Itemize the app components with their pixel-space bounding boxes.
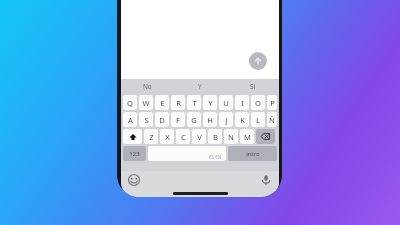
staticText: A	[128, 115, 133, 125]
staticText: U	[223, 98, 229, 108]
staticText: No	[143, 82, 152, 91]
staticText: N	[228, 132, 234, 142]
staticText: Y	[198, 82, 202, 91]
staticText: 123	[129, 150, 140, 158]
button[interactable]: J	[219, 112, 233, 127]
button[interactable]: Dictation	[260, 174, 272, 186]
button[interactable]: Ñ	[267, 112, 277, 127]
staticText: O	[255, 98, 261, 108]
button[interactable]: F	[171, 112, 185, 127]
staticText: K	[240, 115, 245, 125]
staticText: Q	[127, 98, 133, 108]
button[interactable]: O	[251, 95, 265, 110]
staticText: R	[176, 98, 181, 108]
button[interactable]: G	[187, 112, 201, 127]
button[interactable]: P	[267, 95, 277, 110]
button[interactable]: Q	[123, 95, 137, 110]
button[interactable]: K	[235, 112, 249, 127]
button[interactable]: M	[240, 129, 254, 144]
staticText: T	[192, 98, 197, 108]
staticText: F	[176, 115, 180, 125]
button[interactable]: U	[219, 95, 233, 110]
button[interactable]: Shift	[123, 129, 142, 144]
staticText: B	[213, 132, 218, 142]
staticText: H	[207, 115, 213, 125]
button[interactable]: W	[139, 95, 153, 110]
button[interactable]: C	[176, 129, 190, 144]
button[interactable]: H	[203, 112, 217, 127]
staticText: ES EN	[209, 154, 222, 160]
staticText: L	[256, 115, 260, 125]
button[interactable]: Y	[203, 95, 217, 110]
button[interactable]: E	[155, 95, 169, 110]
staticText: I	[241, 98, 244, 108]
staticText: C	[181, 132, 186, 142]
staticText: Si	[250, 82, 256, 91]
staticText: E	[160, 98, 165, 108]
button[interactable]: L	[251, 112, 265, 127]
button[interactable]: intro	[228, 146, 277, 161]
button[interactable]: Emoji	[128, 174, 140, 186]
staticText: P	[270, 98, 275, 108]
button[interactable]: Backspace	[256, 129, 275, 144]
button[interactable]: A	[123, 112, 137, 127]
button[interactable]: D	[155, 112, 169, 127]
staticText: Z	[149, 132, 154, 142]
button[interactable]: B	[208, 129, 222, 144]
button[interactable]: Y	[173, 79, 226, 93]
staticText: W	[142, 98, 150, 108]
button[interactable]: Space	[148, 146, 226, 161]
button[interactable]: Z	[144, 129, 158, 144]
button[interactable]: V	[192, 129, 206, 144]
staticText: M	[244, 132, 251, 142]
button[interactable]: R	[171, 95, 185, 110]
staticText: V	[197, 132, 202, 142]
button[interactable]: S	[139, 112, 153, 127]
button[interactable]: Si	[226, 79, 279, 93]
button[interactable]: N	[224, 129, 238, 144]
staticText: X	[165, 132, 170, 142]
button[interactable]: 123	[123, 146, 146, 161]
staticText: Y	[208, 98, 213, 108]
button[interactable]: No	[121, 79, 173, 93]
button[interactable]: T	[187, 95, 201, 110]
staticText: S	[144, 115, 149, 125]
staticText: J	[225, 115, 228, 125]
staticText: intro	[246, 150, 260, 158]
staticText: Ñ	[269, 115, 275, 125]
button[interactable]: Send	[249, 52, 267, 70]
staticText: D	[159, 115, 165, 125]
staticText: G	[191, 115, 197, 125]
button[interactable]: I	[235, 95, 249, 110]
button[interactable]: X	[160, 129, 174, 144]
